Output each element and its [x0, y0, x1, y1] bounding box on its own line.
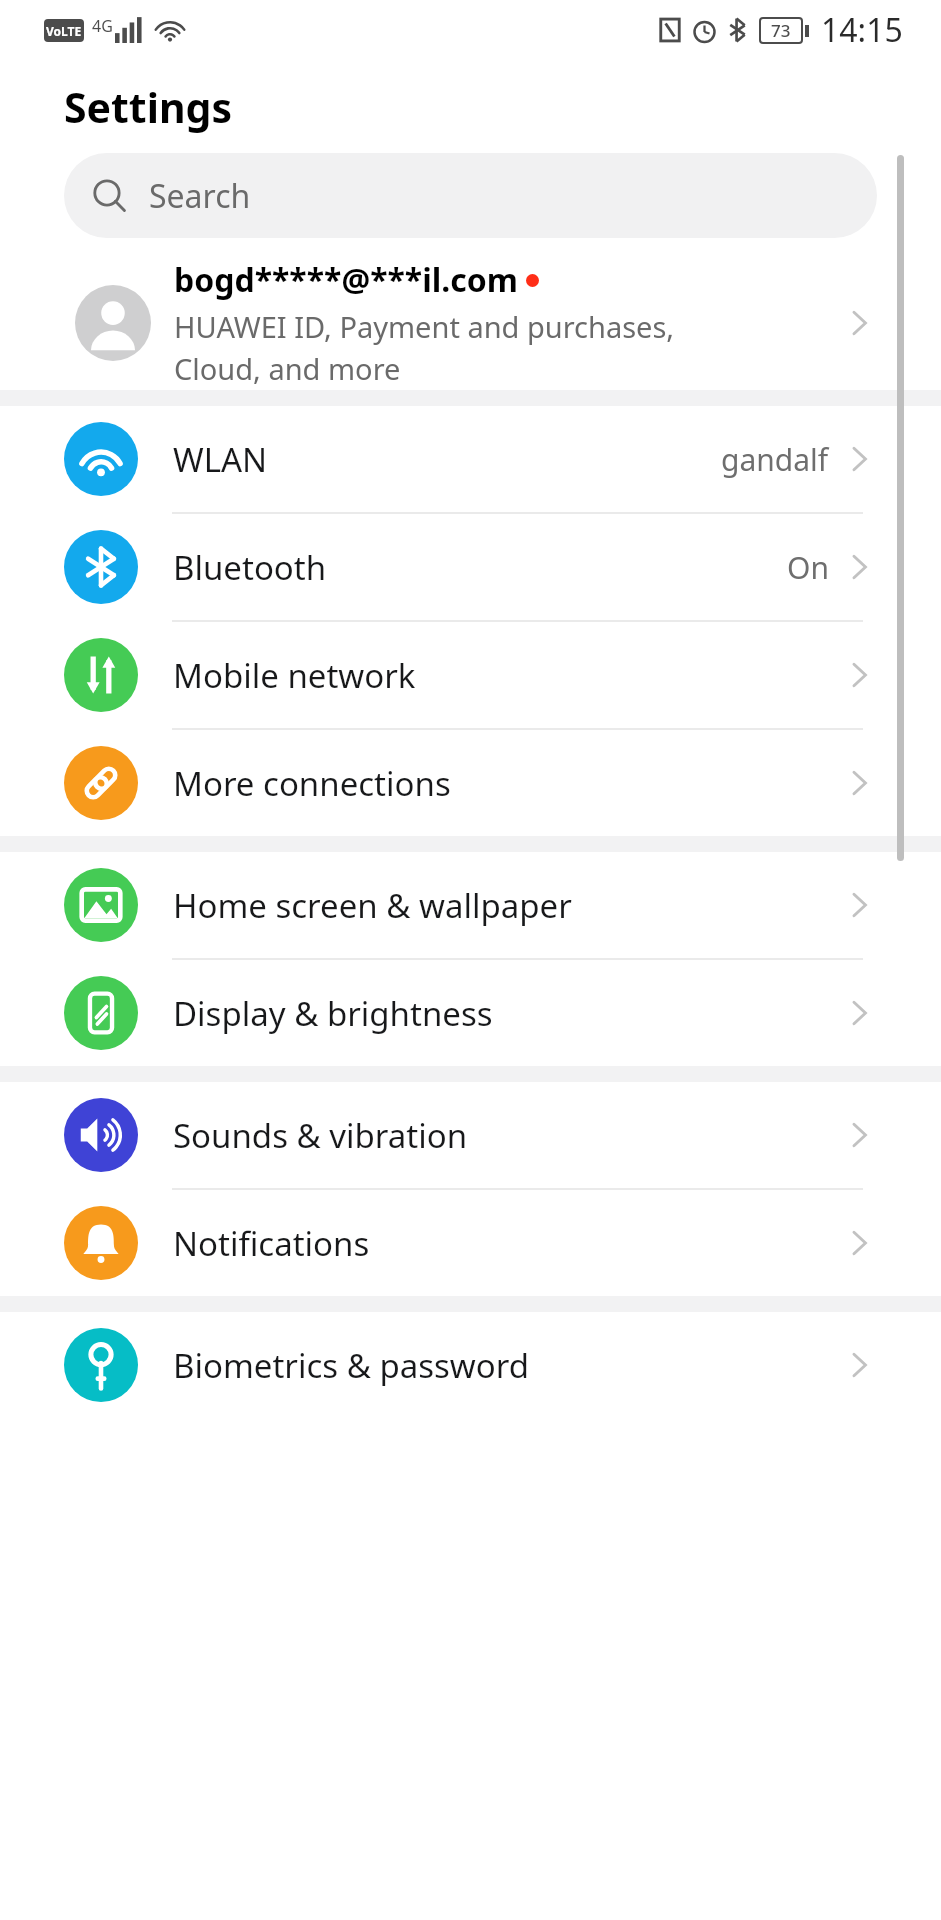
staticText: Search	[149, 174, 251, 218]
button[interactable]: Home screen & wallpaper	[0, 852, 941, 958]
staticText: Bluetooth	[173, 545, 787, 590]
button[interactable]: Mobile network	[0, 622, 941, 728]
staticText: VoLTE	[46, 23, 82, 39]
staticText: Display & brightness	[173, 991, 841, 1036]
other: Notifications	[841, 1225, 877, 1261]
staticText: 4G	[92, 15, 113, 37]
staticText: WLAN	[173, 437, 721, 482]
staticText: Home screen & wallpaper	[173, 883, 841, 928]
button[interactable]: More connections	[0, 730, 941, 836]
button[interactable]: Bluetooth	[0, 514, 941, 620]
staticText: Biometrics & password	[173, 1343, 841, 1388]
staticText: More connections	[173, 761, 841, 806]
button[interactable]: Search	[64, 153, 877, 238]
staticText: Settings	[64, 79, 233, 135]
button[interactable]: Biometrics & password	[0, 1312, 941, 1418]
other: WLAN	[841, 441, 877, 477]
staticText: 14:15	[821, 8, 903, 52]
button[interactable]: bogd*****@***il.com	[0, 255, 941, 390]
button[interactable]: Display & brightness	[0, 960, 941, 1066]
staticText: HUAWEI ID, Payment and purchases, Cloud,…	[174, 307, 675, 388]
staticText: On	[787, 547, 829, 588]
staticText: bogd*****@***il.com	[174, 258, 518, 302]
button[interactable]: Sounds & vibration	[0, 1082, 941, 1188]
other: Account details	[841, 305, 877, 341]
other: Home screen & wallpaper	[841, 887, 877, 923]
button[interactable]: WLAN	[0, 406, 941, 512]
other: Display & brightness	[841, 995, 877, 1031]
other: Bluetooth	[841, 549, 877, 585]
staticText: gandalf	[721, 439, 829, 480]
button[interactable]: Notifications	[0, 1190, 941, 1296]
staticText: 73	[771, 19, 791, 42]
staticText: Notifications	[173, 1221, 841, 1266]
other: Biometrics & password	[841, 1347, 877, 1383]
staticText: Mobile network	[173, 653, 841, 698]
staticText: Sounds & vibration	[173, 1113, 841, 1158]
other: Sounds & vibration	[841, 1117, 877, 1153]
other: More connections	[841, 765, 877, 801]
other: Mobile network	[841, 657, 877, 693]
